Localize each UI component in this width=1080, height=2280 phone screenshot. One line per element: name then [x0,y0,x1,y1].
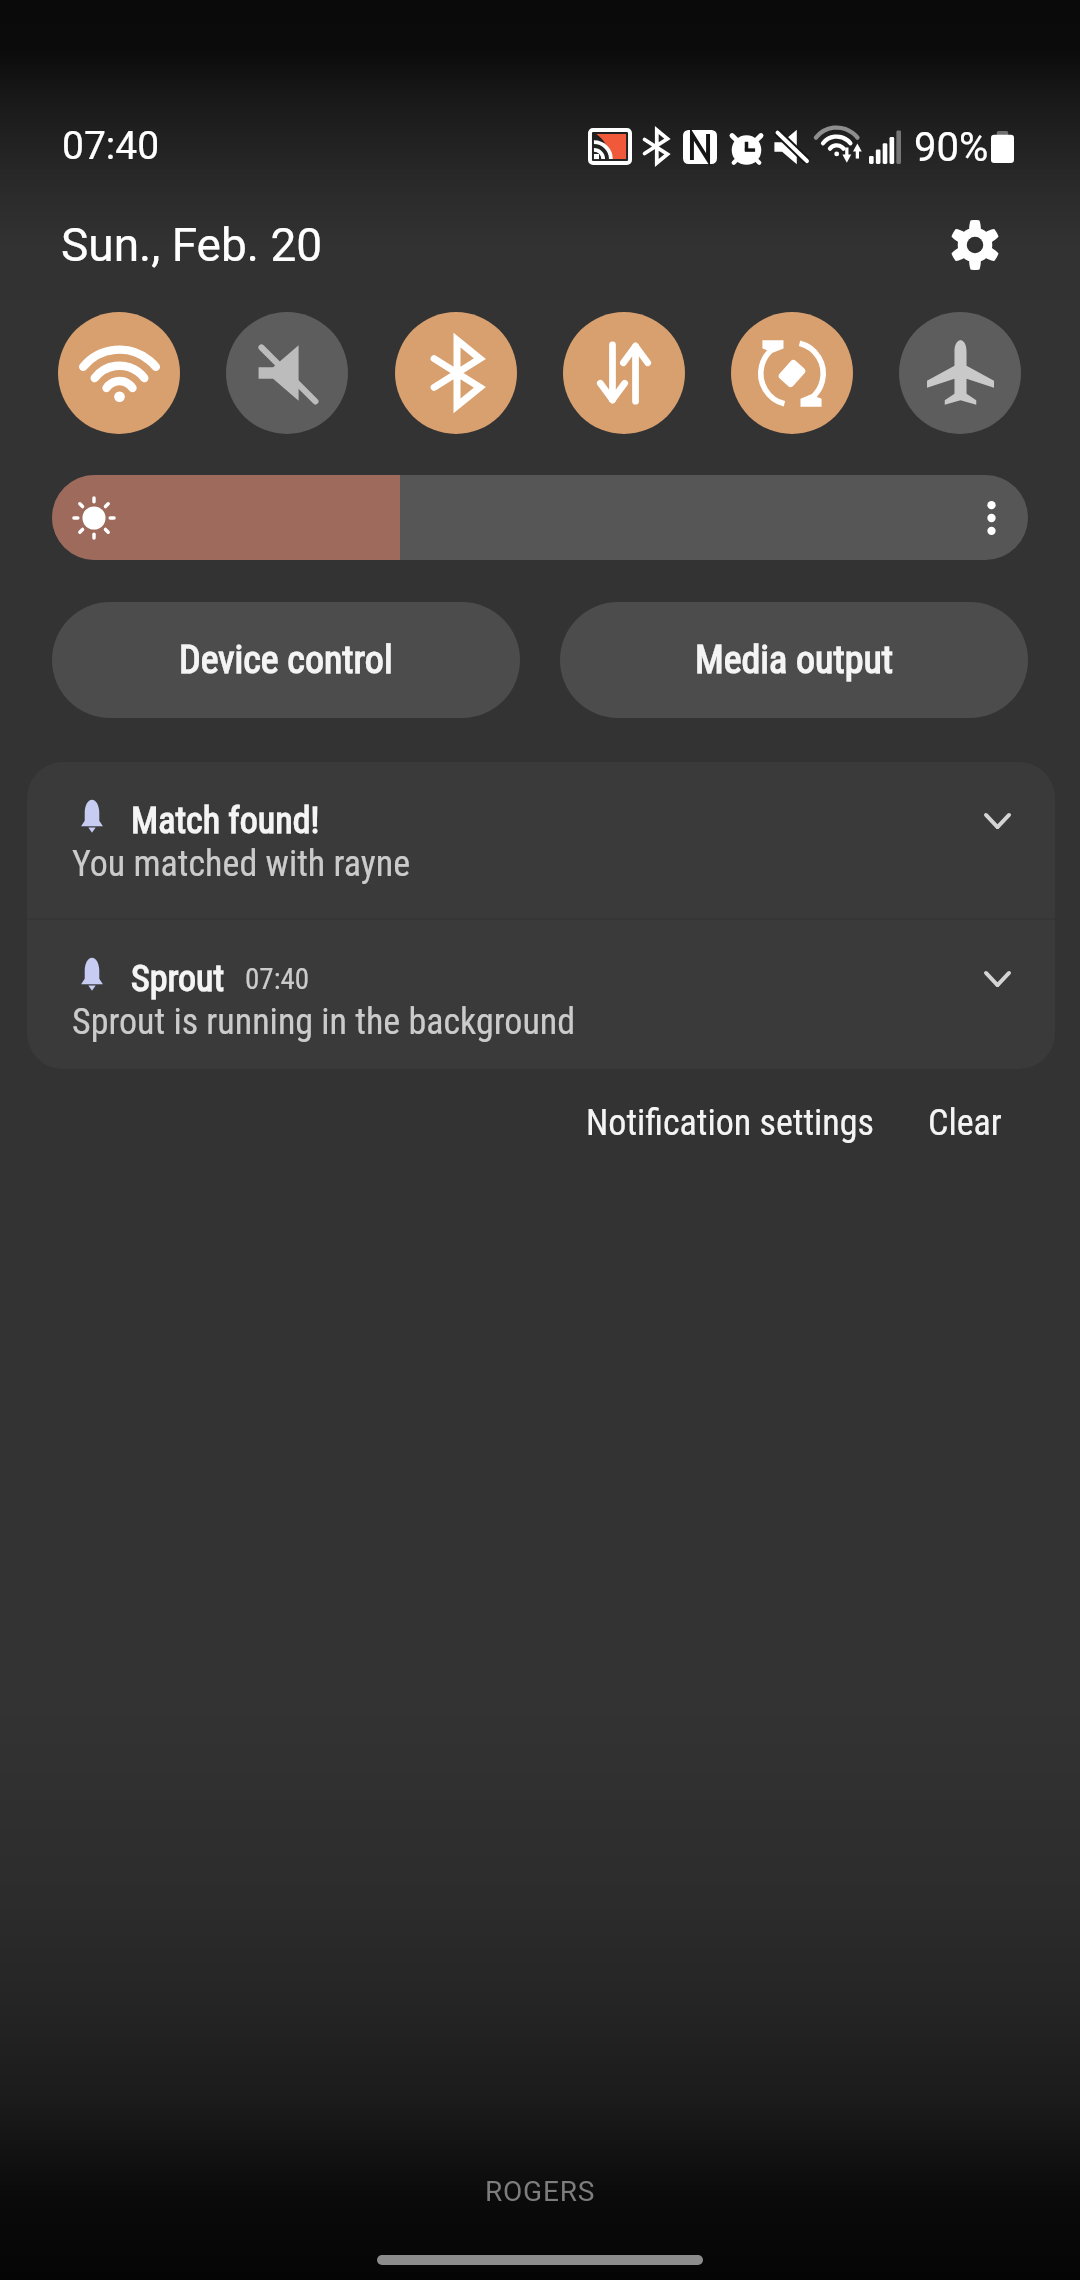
button[interactable]: Wi-Fi [58,312,180,434]
button[interactable]: Mute [226,312,348,434]
staticText: You matched with rayne [72,843,411,885]
staticText: Sun., Feb. 20 [61,218,323,272]
staticText: Match found! [131,800,320,842]
staticText: Device control [179,638,393,683]
staticText: Sprout [131,958,225,1000]
button[interactable]: Media output [560,602,1028,718]
button[interactable]: Auto rotate [731,312,853,434]
button[interactable]: Brightness [52,475,1028,560]
button[interactable]: Clear [912,1090,1018,1156]
button[interactable]: Expand notification [965,948,1029,1012]
button[interactable]: Sprout [27,920,1055,1069]
staticText: Notification settings [586,1102,874,1144]
staticText: Clear [928,1102,1002,1144]
button[interactable]: Match found! [27,762,1055,918]
button[interactable]: Mobile data [563,312,685,434]
button[interactable]: Bluetooth [395,312,517,434]
staticText: ROGERS [485,2175,596,2208]
button[interactable]: Expand notification [965,790,1029,854]
staticText: 90% [914,124,989,171]
staticText: Media output [695,638,894,683]
button[interactable]: Airplane mode [899,312,1021,434]
button[interactable]: Notification settings [570,1090,890,1156]
staticText: Sprout is running in the background [72,1001,576,1043]
staticText: 07:40 [245,962,310,996]
button[interactable]: Settings [941,211,1009,279]
button[interactable]: Device control [52,602,520,718]
staticText: 07:40 [62,123,160,169]
